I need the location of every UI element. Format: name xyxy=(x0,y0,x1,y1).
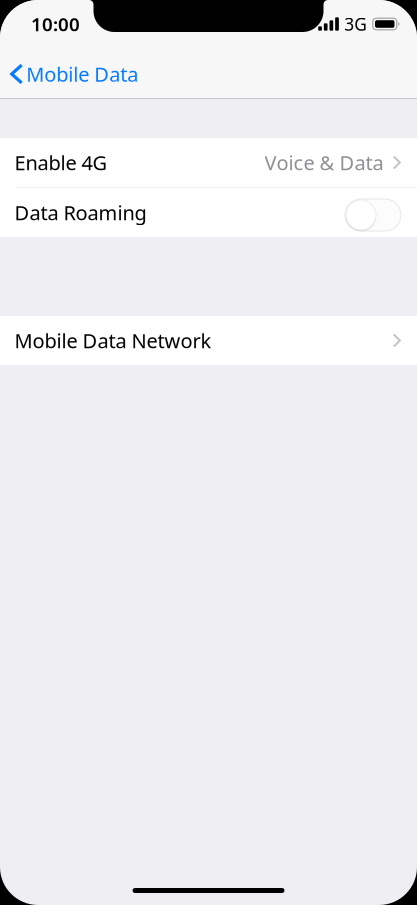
staticText: Voice & Data xyxy=(265,149,384,176)
staticText: Enable 4G xyxy=(14,149,107,176)
button[interactable]: Enable 4G xyxy=(0,138,417,187)
staticText: Mobile Data xyxy=(26,61,138,87)
staticText: Mobile Data Network xyxy=(14,327,211,354)
button[interactable]: Data Roaming, off xyxy=(345,194,401,231)
staticText: 10:00 xyxy=(31,12,80,36)
button[interactable]: Data Roaming xyxy=(0,188,417,237)
button[interactable]: Mobile Data xyxy=(0,44,417,98)
button[interactable]: Mobile Data Network xyxy=(0,316,417,365)
staticText: Data Roaming xyxy=(14,199,146,226)
staticText: 3G xyxy=(344,12,367,35)
